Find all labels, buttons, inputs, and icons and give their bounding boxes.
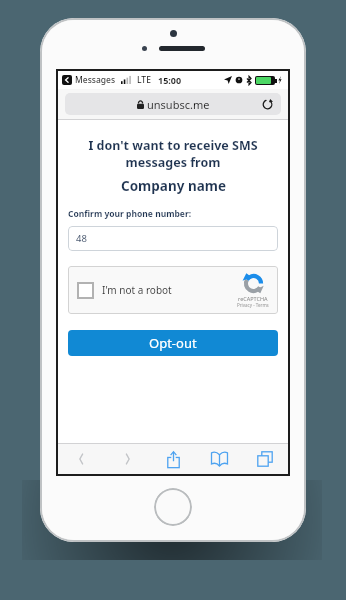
staticText: Company name	[121, 177, 226, 195]
button[interactable]: Opt-out	[68, 330, 278, 356]
staticText: Privacy - Terms	[237, 302, 269, 308]
button[interactable]: Forward	[104, 444, 150, 474]
button[interactable]: Home	[154, 488, 192, 526]
button[interactable]: I'm not a robot	[68, 266, 278, 314]
button[interactable]: Tabs	[242, 444, 288, 474]
staticText: Opt-out	[149, 334, 197, 352]
staticText: 15:00	[158, 74, 182, 86]
button[interactable]: unsubsc.me	[65, 93, 281, 115]
button[interactable]: Reload	[259, 96, 275, 112]
staticText: 48	[76, 232, 87, 245]
staticText: unsubsc.me	[147, 97, 210, 112]
button[interactable]: Back to Messages	[62, 75, 72, 85]
button[interactable]: Back	[58, 444, 104, 474]
staticText: I'm not a robot	[102, 283, 172, 297]
button[interactable]: 48	[68, 226, 278, 251]
staticText: Messages	[75, 74, 116, 86]
staticText: I don't want to receive SMS messages fro…	[88, 137, 258, 170]
button[interactable]: Share	[150, 444, 196, 474]
staticText: LTE	[137, 74, 151, 86]
staticText: reCAPTCHA	[238, 295, 268, 302]
staticText: Confirm your phone number:	[68, 208, 192, 220]
button[interactable]: Bookmarks	[196, 444, 242, 474]
